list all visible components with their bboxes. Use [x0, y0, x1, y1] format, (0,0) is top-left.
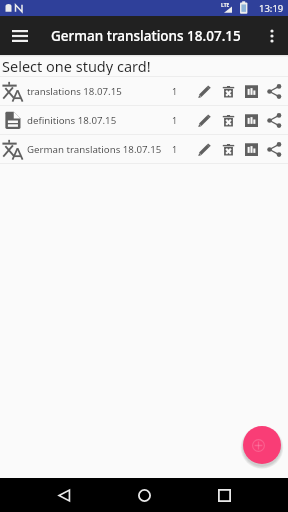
button[interactable]: Edit [193, 109, 215, 131]
button[interactable]: Share [263, 138, 285, 160]
button[interactable]: Delete [217, 109, 239, 131]
button[interactable]: Open navigation menu [6, 22, 34, 50]
button[interactable]: Delete [217, 80, 239, 102]
staticText: 1 [172, 114, 178, 126]
staticText: 13:19 [259, 2, 284, 15]
button[interactable]: Share [263, 80, 285, 102]
button[interactable]: Statistics [240, 80, 262, 102]
staticText: German translations 18.07.15 [51, 27, 241, 45]
staticText: 1 [172, 85, 178, 97]
staticText: 1 [172, 143, 178, 155]
button[interactable]: Share [263, 109, 285, 131]
staticText: German translations 18.07.15 [27, 143, 167, 156]
button[interactable]: Statistics [240, 138, 262, 160]
button[interactable]: Edit [193, 80, 215, 102]
staticText: LTE [221, 2, 230, 9]
button[interactable]: Edit [193, 138, 215, 160]
button[interactable]: Home [130, 481, 158, 509]
button[interactable]: Delete [217, 138, 239, 160]
button[interactable]: Add study card [243, 426, 281, 464]
staticText: translations 18.07.15 [27, 85, 167, 98]
button[interactable]: Back [50, 481, 78, 509]
button[interactable]: Recent apps [210, 481, 238, 509]
button[interactable]: translations 18.07.15 [0, 77, 288, 105]
button[interactable]: German translations 18.07.15 [0, 135, 288, 163]
staticText: definitions 18.07.15 [27, 114, 167, 127]
button[interactable]: Statistics [240, 109, 262, 131]
staticText: Select one study card! [2, 56, 151, 75]
button[interactable]: More options [258, 22, 286, 50]
button[interactable]: definitions 18.07.15 [0, 106, 288, 134]
